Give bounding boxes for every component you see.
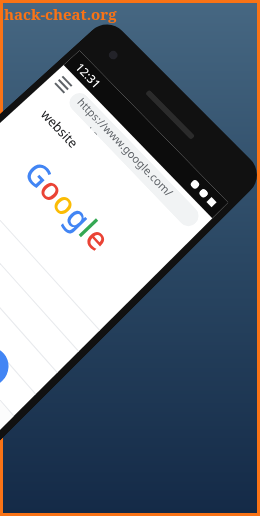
staticText: website	[37, 106, 83, 152]
staticText: g	[57, 196, 101, 240]
staticText: G	[16, 152, 62, 197]
staticText: o	[31, 168, 75, 211]
staticText: hack-cheat.org	[4, 4, 117, 24]
staticText: o	[44, 182, 88, 225]
staticText: https://www.google.com/search?	[71, 95, 203, 231]
staticText: e	[76, 216, 120, 260]
staticText: l	[70, 210, 107, 246]
staticText: 12:31	[72, 59, 105, 91]
